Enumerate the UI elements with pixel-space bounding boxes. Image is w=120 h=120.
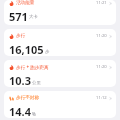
staticText: 14.4 bbox=[9, 104, 31, 118]
staticText: % bbox=[32, 111, 36, 117]
staticText: 步 bbox=[45, 49, 50, 55]
button[interactable]: 活动能量 bbox=[4, 0, 116, 25]
staticText: 10.3 bbox=[9, 73, 31, 87]
staticText: 活动能量 bbox=[16, 0, 35, 6]
staticText: 步行 bbox=[16, 33, 26, 39]
staticText: 11:20 bbox=[96, 33, 107, 39]
staticText: 11:20 bbox=[96, 64, 107, 70]
button[interactable]: 步行 + 跑步距离 bbox=[4, 60, 116, 87]
staticText: 公里 bbox=[32, 80, 41, 86]
staticText: 11:12 bbox=[96, 95, 107, 101]
staticText: 步行不对称 bbox=[16, 95, 39, 101]
button[interactable]: 步行 bbox=[4, 29, 116, 56]
staticText: 11:21 bbox=[96, 0, 107, 6]
staticText: 步行 + 跑步距离 bbox=[16, 64, 49, 70]
staticText: 571 bbox=[9, 9, 28, 21]
staticText: 大卡 bbox=[29, 14, 38, 20]
button[interactable]: 步行不对称 bbox=[4, 91, 116, 118]
staticText: 16,105 bbox=[9, 42, 44, 56]
